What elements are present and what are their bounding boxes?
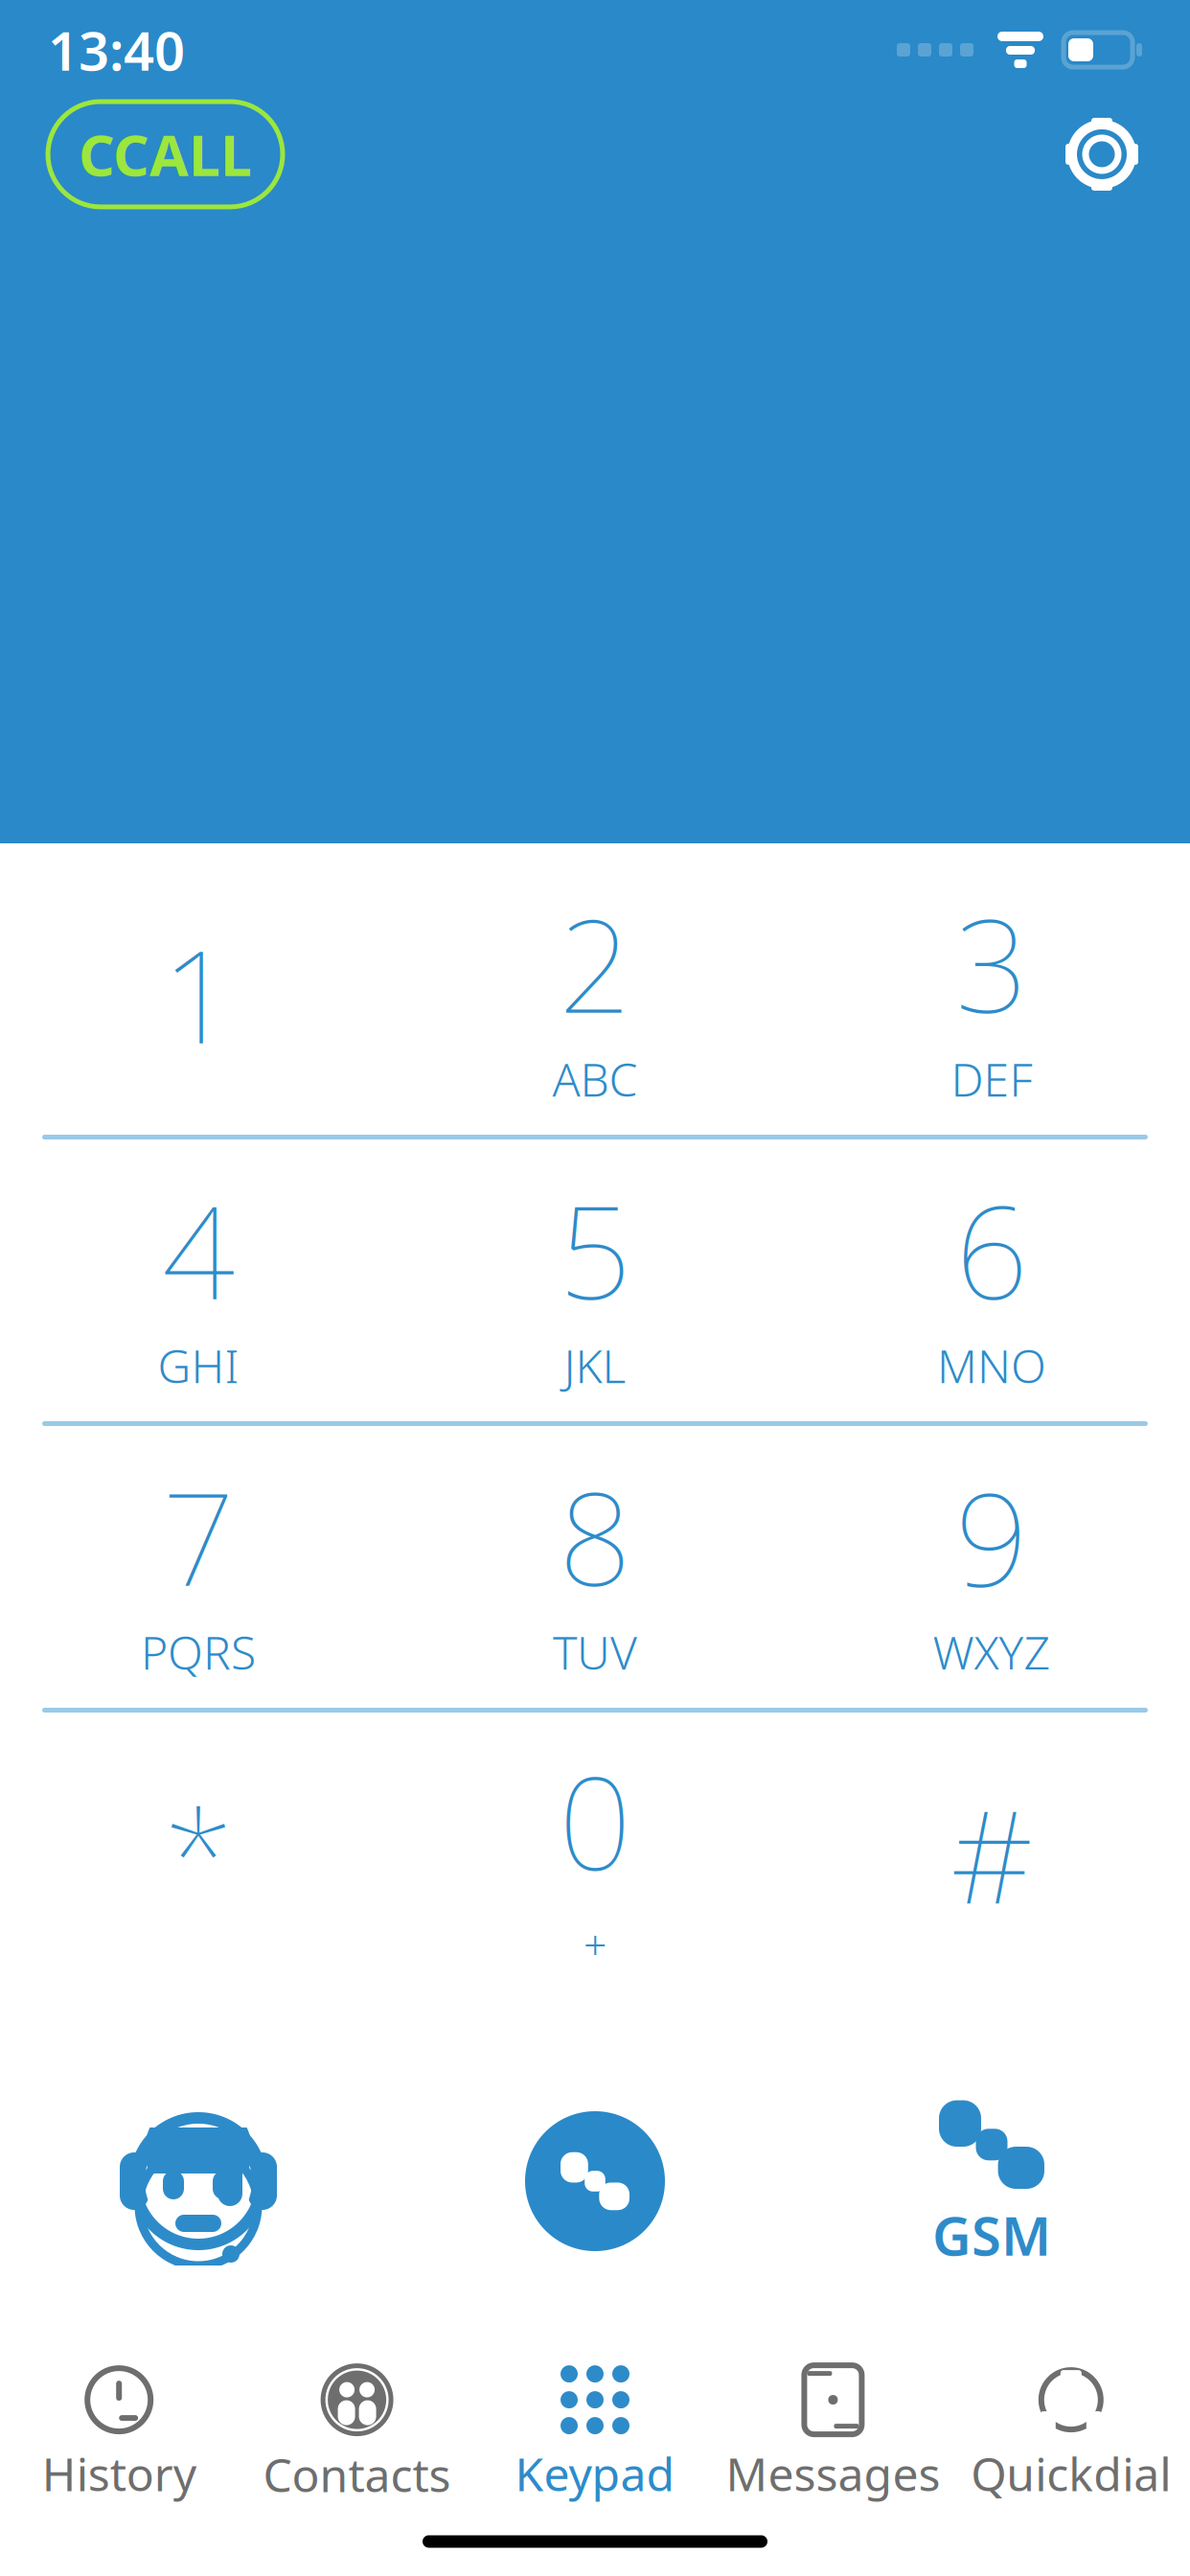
button[interactable]: # <box>793 1713 1190 1994</box>
staticText: CCALL <box>79 117 252 192</box>
staticText: # <box>950 1769 1033 1938</box>
staticText: ABC <box>552 1048 638 1109</box>
button[interactable]: Settings <box>1062 114 1142 195</box>
button[interactable]: Messages <box>714 2361 952 2507</box>
button[interactable]: GSM call <box>793 2081 1190 2282</box>
staticText: PQRS <box>141 1621 256 1682</box>
button[interactable]: 8 <box>397 1426 793 1708</box>
button[interactable]: Call <box>397 2081 793 2282</box>
staticText: DEF <box>951 1048 1032 1109</box>
button[interactable]: 4 <box>0 1139 397 1421</box>
staticText: 2 <box>559 878 631 1048</box>
staticText: 5 <box>559 1165 631 1335</box>
staticText: 3 <box>955 878 1028 1048</box>
button[interactable]: Quickdial <box>952 2361 1190 2507</box>
button[interactable]: Keypad <box>476 2361 714 2507</box>
staticText: Quickdial <box>971 2443 1171 2504</box>
staticText: * <box>163 1769 233 1938</box>
staticText: 13:40 <box>48 14 185 85</box>
staticText: 1 <box>162 909 235 1079</box>
staticText: GHI <box>158 1335 239 1396</box>
button[interactable]: 1 <box>0 853 397 1135</box>
staticText: Contacts <box>263 2444 451 2505</box>
staticText: + <box>584 1917 606 1971</box>
staticText: WXYZ <box>933 1621 1051 1682</box>
staticText: 7 <box>162 1451 235 1621</box>
button[interactable]: CCALL <box>48 102 283 207</box>
button[interactable]: 6 <box>793 1139 1190 1421</box>
button[interactable]: 7 <box>0 1426 397 1708</box>
button[interactable]: Support <box>0 2081 397 2282</box>
button[interactable]: History <box>0 2361 238 2507</box>
staticText: 4 <box>162 1165 235 1335</box>
button[interactable]: 5 <box>397 1139 793 1421</box>
staticText: History <box>42 2443 196 2504</box>
staticText: GSM <box>932 2199 1051 2270</box>
staticText: 0 <box>559 1736 631 1905</box>
staticText: 8 <box>559 1451 631 1621</box>
button[interactable]: 9 <box>793 1426 1190 1708</box>
button[interactable]: 0 <box>397 1713 793 1994</box>
button[interactable]: * <box>0 1713 397 1994</box>
staticText: 9 <box>955 1451 1028 1621</box>
staticText: Keypad <box>515 2443 675 2504</box>
staticText: MNO <box>937 1335 1046 1396</box>
button[interactable]: 2 <box>397 853 793 1135</box>
staticText: JKL <box>564 1335 626 1396</box>
staticText: Messages <box>726 2443 940 2504</box>
staticText: TUV <box>553 1621 637 1682</box>
button[interactable]: 3 <box>793 853 1190 1135</box>
button[interactable]: Contacts <box>238 2361 476 2507</box>
staticText: 6 <box>955 1165 1028 1335</box>
